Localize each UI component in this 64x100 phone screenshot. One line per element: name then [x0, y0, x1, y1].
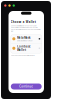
staticText: Connect a wallet to store your keys, sig…	[11, 25, 41, 32]
button[interactable]: Continue	[11, 83, 42, 89]
staticText: Choose a Wallet	[11, 20, 36, 24]
button[interactable]: MetaMask	[11, 35, 42, 43]
staticText: Your keys never leave this device.	[11, 55, 35, 56]
button[interactable]: Zoom window	[13, 4, 15, 7]
button[interactable]: Minimize window	[8, 4, 11, 7]
staticText: Continue	[19, 85, 33, 88]
button[interactable]: Coinbase Wallet	[11, 43, 42, 53]
staticText: Coinbase Wallet	[17, 45, 31, 52]
staticText: Detected in this browser	[17, 40, 33, 42]
button[interactable]: Close window	[4, 4, 6, 7]
staticText: MetaMask	[17, 36, 31, 39]
